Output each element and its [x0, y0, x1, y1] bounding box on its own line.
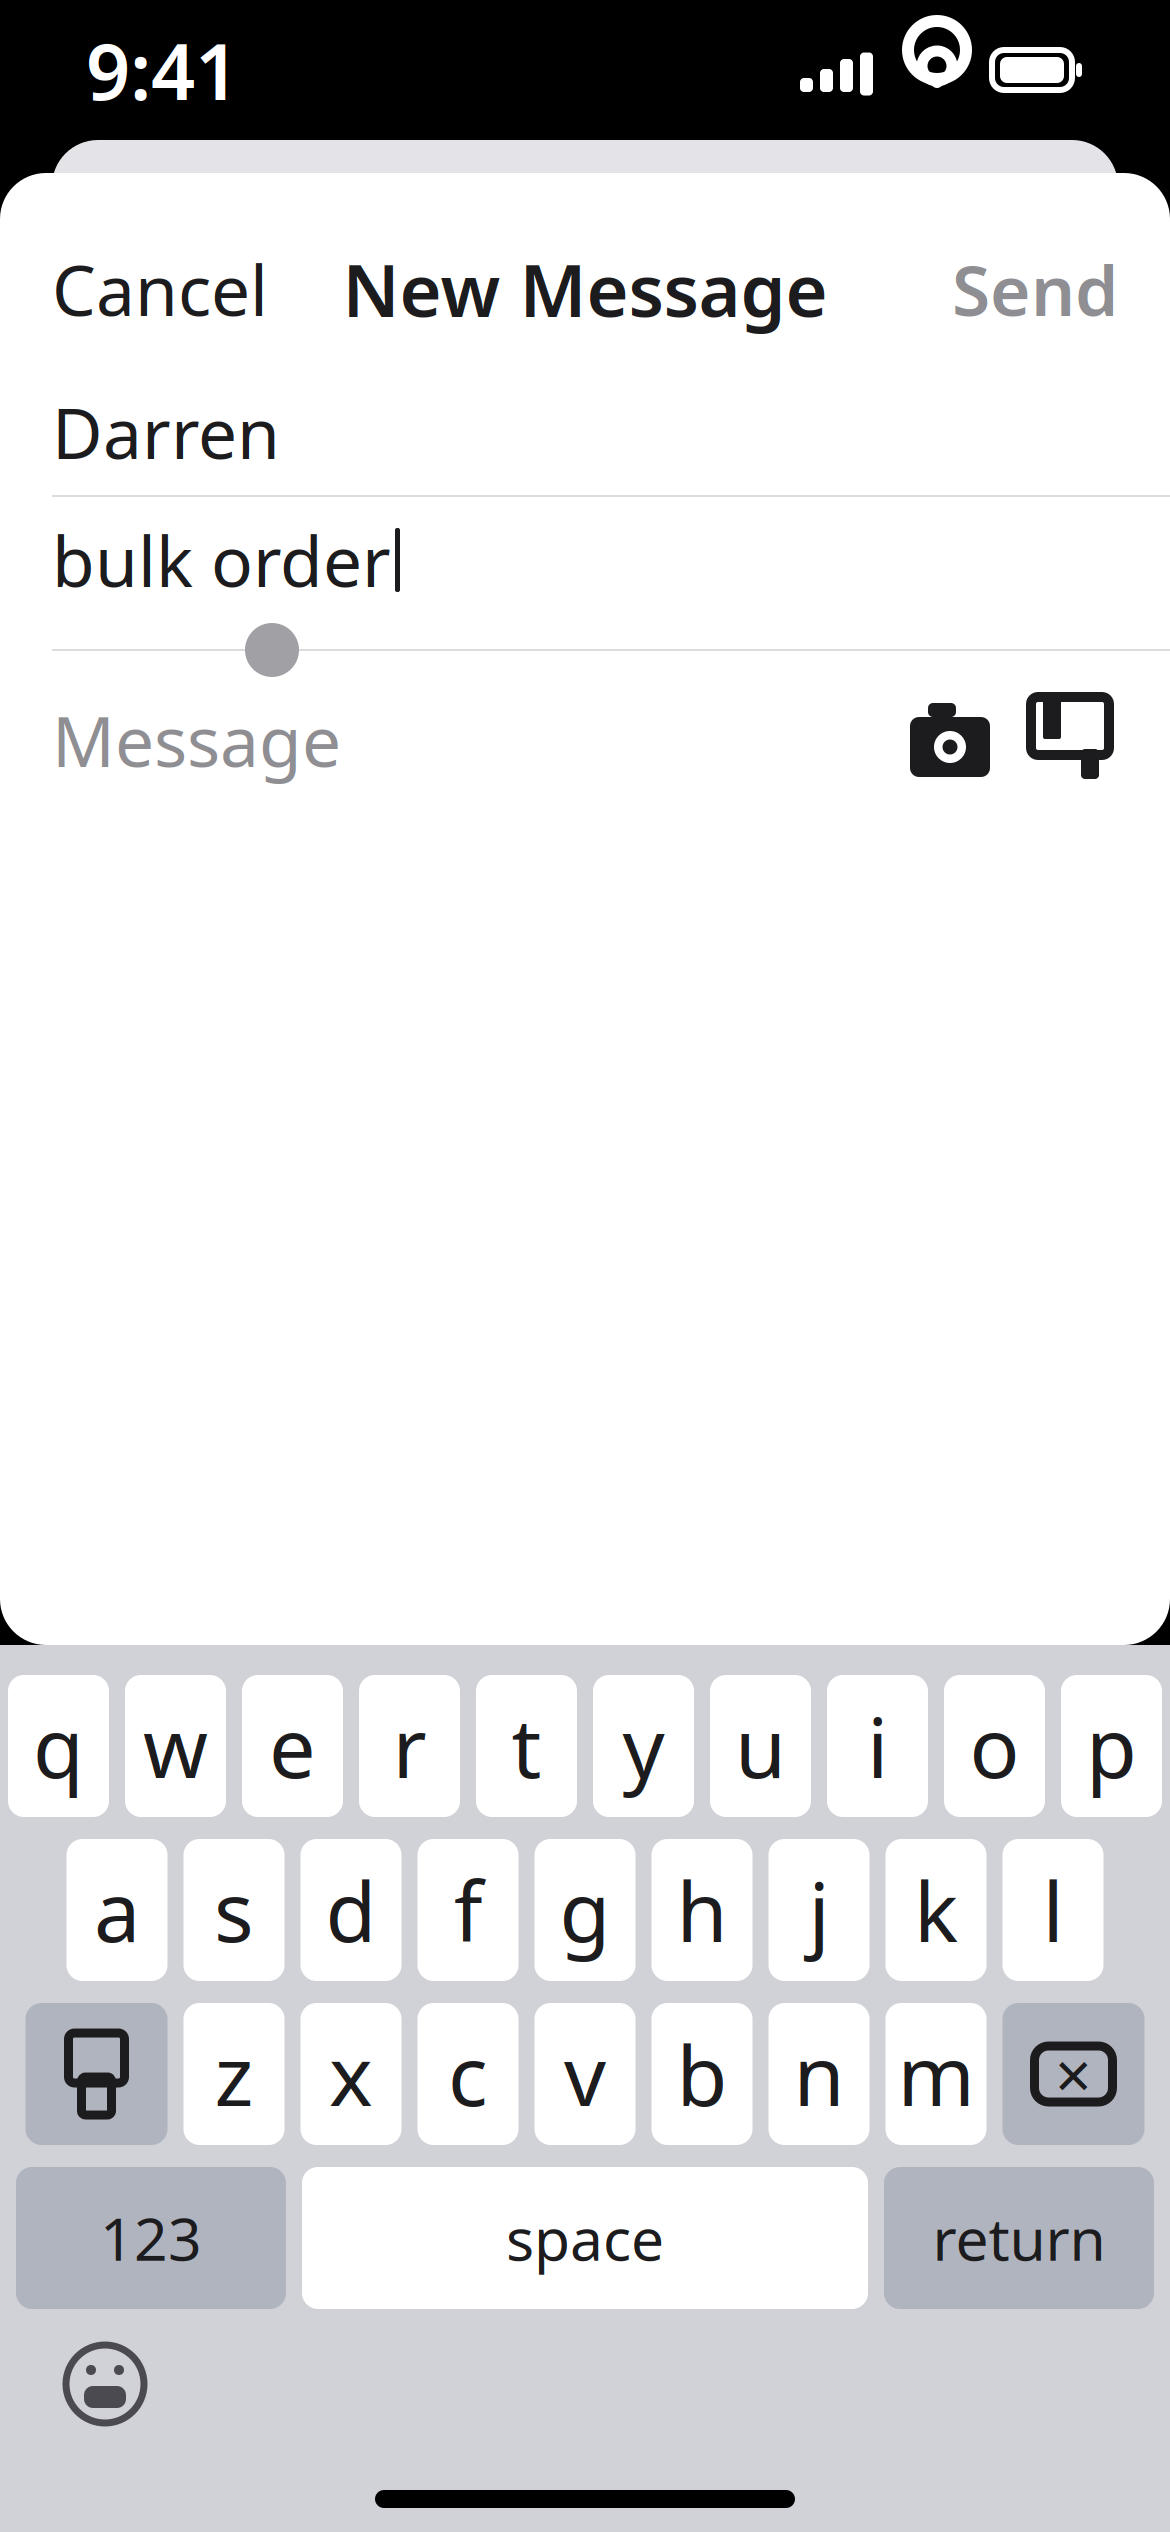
staticText: c — [448, 2019, 488, 2129]
staticText: Send — [952, 243, 1118, 335]
staticText: g — [559, 1855, 610, 1965]
button[interactable]: t — [476, 1675, 577, 1817]
staticText: e — [269, 1691, 316, 1801]
button[interactable]: a — [66, 1839, 167, 1981]
staticText: Darren — [52, 386, 280, 478]
button[interactable]: c — [417, 2003, 518, 2145]
staticText: p — [1086, 1691, 1137, 1801]
staticText: f — [454, 1855, 482, 1965]
staticText: d — [325, 1855, 376, 1965]
button[interactable]: Stickers — [1010, 680, 1130, 800]
staticText: space — [506, 2199, 664, 2277]
button[interactable]: Camera — [890, 680, 1010, 800]
staticText: u — [735, 1691, 786, 1801]
staticText: k — [914, 1855, 958, 1965]
button[interactable]: x — [300, 2003, 401, 2145]
button[interactable]: Message — [0, 677, 800, 803]
button[interactable]: p — [1061, 1675, 1162, 1817]
button[interactable]: Cancel — [26, 219, 294, 359]
button[interactable]: k — [885, 1839, 986, 1981]
staticText: b — [676, 2019, 727, 2129]
button[interactable]: i — [827, 1675, 928, 1817]
button[interactable]: return — [884, 2167, 1154, 2309]
button[interactable]: f — [417, 1839, 518, 1981]
button[interactable]: space — [302, 2167, 868, 2309]
button[interactable]: h — [651, 1839, 752, 1981]
staticText: v — [564, 2019, 606, 2129]
staticText: 123 — [100, 2199, 202, 2277]
button[interactable]: m — [885, 2003, 986, 2145]
staticText: New Message — [342, 241, 827, 337]
button[interactable]: z — [183, 2003, 284, 2145]
button[interactable]: g — [534, 1839, 635, 1981]
staticText: Cancel — [52, 243, 268, 335]
staticText: o — [969, 1691, 1019, 1801]
staticText: × — [1055, 2031, 1092, 2116]
staticText: h — [676, 1855, 727, 1965]
button[interactable]: d — [300, 1839, 401, 1981]
button[interactable]: b — [651, 2003, 752, 2145]
button[interactable]: n — [768, 2003, 869, 2145]
staticText: n — [793, 2019, 844, 2129]
staticText: s — [214, 1855, 254, 1965]
staticText: l — [1042, 1855, 1063, 1965]
button[interactable]: Send — [926, 219, 1144, 359]
staticText: i — [867, 1691, 888, 1801]
button[interactable]: Emoji — [50, 2329, 160, 2439]
button[interactable]: e — [242, 1675, 343, 1817]
button[interactable]: l — [1002, 1839, 1103, 1981]
staticText: Message — [52, 694, 341, 786]
staticText: z — [214, 2019, 253, 2129]
button[interactable]: o — [944, 1675, 1045, 1817]
staticText: y — [622, 1691, 664, 1801]
staticText: j — [808, 1855, 829, 1965]
button[interactable]: q — [8, 1675, 109, 1817]
button[interactable]: Shift — [25, 2003, 167, 2145]
staticText: m — [897, 2019, 974, 2129]
staticText: r — [392, 1691, 426, 1801]
button[interactable]: v — [534, 2003, 635, 2145]
button[interactable]: w — [125, 1675, 226, 1817]
staticText: return — [932, 2199, 1105, 2277]
button[interactable]: j — [768, 1839, 869, 1981]
staticText: a — [94, 1855, 140, 1965]
button[interactable]: u — [710, 1675, 811, 1817]
staticText: 9:41 — [86, 19, 239, 121]
button[interactable]: r — [359, 1675, 460, 1817]
button[interactable]: bulk order — [0, 497, 1170, 623]
staticText: w — [143, 1691, 208, 1801]
staticText: t — [511, 1691, 541, 1801]
button[interactable]: s — [183, 1839, 284, 1981]
staticText: q — [33, 1691, 84, 1801]
staticText: bulk order — [52, 514, 391, 606]
button[interactable]: y — [593, 1675, 694, 1817]
button[interactable]: Delete — [1002, 2003, 1144, 2145]
button[interactable]: Darren — [0, 369, 1170, 495]
button[interactable]: 123 — [16, 2167, 286, 2309]
staticText: x — [329, 2019, 373, 2129]
